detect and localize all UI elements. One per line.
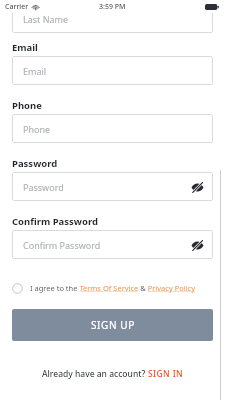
button[interactable]: Confirm Password [12, 230, 213, 259]
staticText: Email [23, 65, 47, 77]
button[interactable]: Email [12, 56, 213, 85]
staticText: Last Name [23, 13, 69, 25]
staticText: Password [12, 157, 58, 170]
button[interactable]: Agree to terms checkbox [12, 279, 196, 297]
button[interactable]: SIGN UP [12, 309, 213, 341]
other: Agree to terms checkbox [12, 283, 23, 294]
button[interactable]: Show password [189, 237, 205, 253]
staticText: 3:59 PM [99, 2, 126, 12]
staticText: Confirm Password [12, 215, 98, 228]
staticText: Phone [23, 123, 51, 135]
staticText: SIGN UP [91, 318, 135, 332]
button[interactable]: Phone [12, 114, 213, 143]
staticText: Confirm Password [23, 239, 101, 251]
staticText: Carrier [5, 2, 29, 12]
button[interactable]: Show password [189, 179, 205, 195]
staticText: SIGN IN [148, 368, 184, 380]
button[interactable]: Password [12, 172, 213, 201]
staticText: Email [12, 41, 38, 54]
staticText: Phone [12, 99, 42, 112]
staticText: Already have an account? [42, 368, 148, 380]
button[interactable]: Last Name [12, 4, 213, 33]
staticText: I agree to the Terms Of Service & Privac… [30, 283, 196, 293]
button[interactable]: SIGN IN [148, 368, 184, 380]
staticText: Password [23, 181, 64, 193]
